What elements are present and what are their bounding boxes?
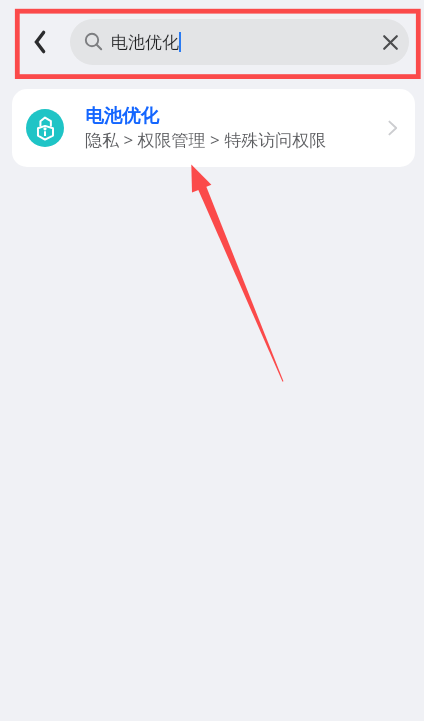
- button[interactable]: 电池优化: [12, 89, 415, 167]
- staticText: 电池优化: [85, 104, 159, 127]
- staticText: 电池优化: [111, 32, 179, 53]
- staticText: 隐私 > 权限管理 > 特殊访问权限: [85, 128, 327, 151]
- button[interactable]: Back: [18, 20, 62, 64]
- button[interactable]: 电池优化: [70, 19, 409, 65]
- button[interactable]: Clear text: [372, 24, 408, 60]
